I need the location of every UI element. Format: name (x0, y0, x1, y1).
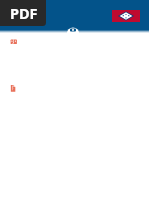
button[interactable]: Image (10, 38, 18, 45)
button[interactable]: PDF (0, 0, 46, 26)
staticText: PDF (10, 3, 38, 23)
button[interactable]: Document (10, 84, 17, 93)
button[interactable]: Arkansas state flag (112, 10, 140, 22)
button[interactable]: Site logo (62, 27, 84, 41)
